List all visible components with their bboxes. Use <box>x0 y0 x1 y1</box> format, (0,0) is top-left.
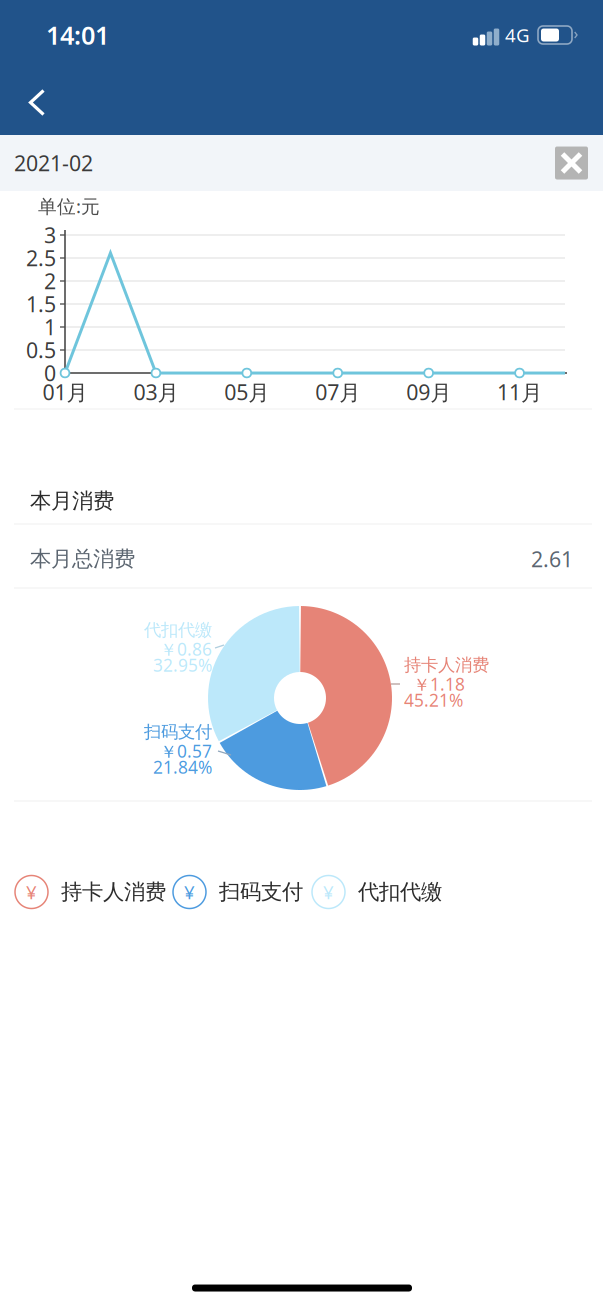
staticText: 持卡人消费 <box>404 654 489 676</box>
staticText: 代扣代缴 <box>358 879 442 905</box>
staticText: 32.95% <box>153 653 212 676</box>
button[interactable]: ¥ <box>15 869 166 914</box>
button[interactable]: Close <box>548 139 595 186</box>
staticText: 0 <box>44 359 56 387</box>
staticText: 05月 <box>224 378 269 406</box>
staticText: 单位:元 <box>38 194 100 218</box>
staticText: 01月 <box>42 378 87 406</box>
staticText: ¥ <box>323 880 334 904</box>
staticText: 03月 <box>133 378 178 406</box>
staticText: 本月总消费 <box>30 546 135 572</box>
staticText: 3 <box>44 221 56 249</box>
staticText: 2 <box>44 267 56 295</box>
staticText: 4G <box>505 23 530 47</box>
staticText: 扫码支付 <box>219 879 303 905</box>
staticText: ￥0.57 <box>160 739 212 762</box>
staticText: ¥ <box>26 880 37 904</box>
staticText: 本月消费 <box>30 488 114 514</box>
staticText: ￥0.86 <box>160 637 212 660</box>
staticText: 2.5 <box>26 244 56 272</box>
staticText: 代扣代缴 <box>144 619 212 641</box>
button[interactable]: ¥ <box>312 869 442 914</box>
staticText: 1 <box>44 313 56 341</box>
staticText: 07月 <box>315 378 360 406</box>
staticText: 2021-02 <box>14 149 93 177</box>
staticText: 21.84% <box>153 755 212 778</box>
staticText: ￥1.18 <box>413 672 465 695</box>
staticText: 11月 <box>497 378 542 406</box>
staticText: 0.5 <box>26 336 56 364</box>
staticText: 持卡人消费 <box>61 879 166 905</box>
staticText: 45.21% <box>404 688 463 711</box>
staticText: 1.5 <box>26 290 56 318</box>
staticText: 09月 <box>406 378 451 406</box>
button[interactable]: ¥ <box>173 869 303 914</box>
staticText: 14:01 <box>46 18 109 52</box>
staticText: ¥ <box>184 880 195 904</box>
button[interactable]: Back <box>0 70 74 135</box>
staticText: 2.61 <box>531 545 573 573</box>
staticText: 扫码支付 <box>144 721 212 743</box>
